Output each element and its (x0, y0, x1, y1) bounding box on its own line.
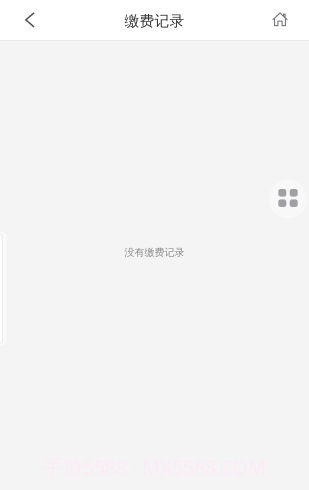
button[interactable]: Back (0, 0, 48, 39)
staticText: 缴费记录 (124, 12, 184, 30)
button[interactable]: Home (258, 0, 309, 39)
staticText: 没有缴费记录 (124, 246, 184, 259)
staticText: 手游5588 · MX5588.COM (43, 453, 266, 480)
button[interactable]: Apps (269, 180, 307, 218)
